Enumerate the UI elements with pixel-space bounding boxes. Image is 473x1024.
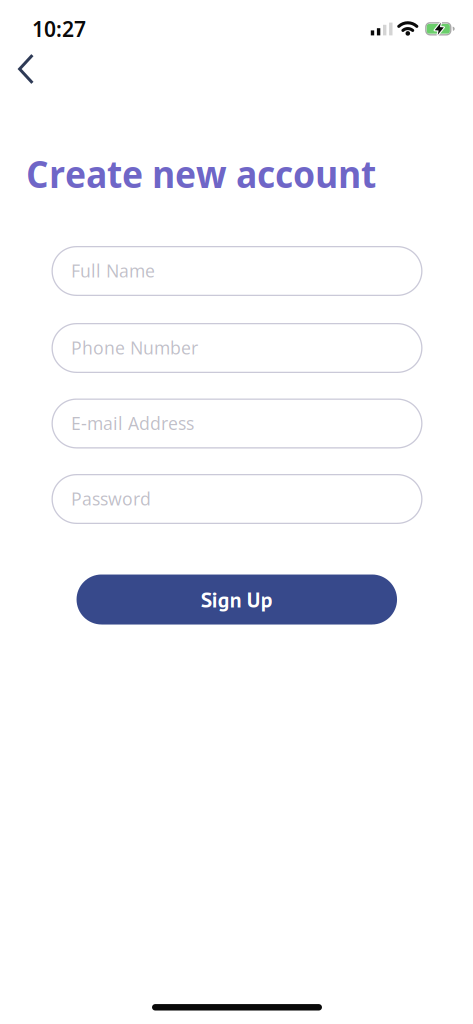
button[interactable]: Full Name xyxy=(51,246,422,296)
button[interactable]: E-mail Address xyxy=(51,398,422,448)
button[interactable]: Password xyxy=(51,474,422,524)
staticText: Full Name xyxy=(71,257,155,283)
staticText: Password xyxy=(71,485,151,511)
staticText: E-mail Address xyxy=(71,410,194,435)
staticText: Create new account xyxy=(26,148,376,199)
staticText: Phone Number xyxy=(71,334,198,360)
button[interactable]: Phone Number xyxy=(51,323,422,373)
button[interactable]: Sign Up xyxy=(77,574,397,624)
button[interactable] xyxy=(7,44,44,94)
staticText: 10:27 xyxy=(32,14,86,43)
staticText: Sign Up xyxy=(201,585,273,613)
